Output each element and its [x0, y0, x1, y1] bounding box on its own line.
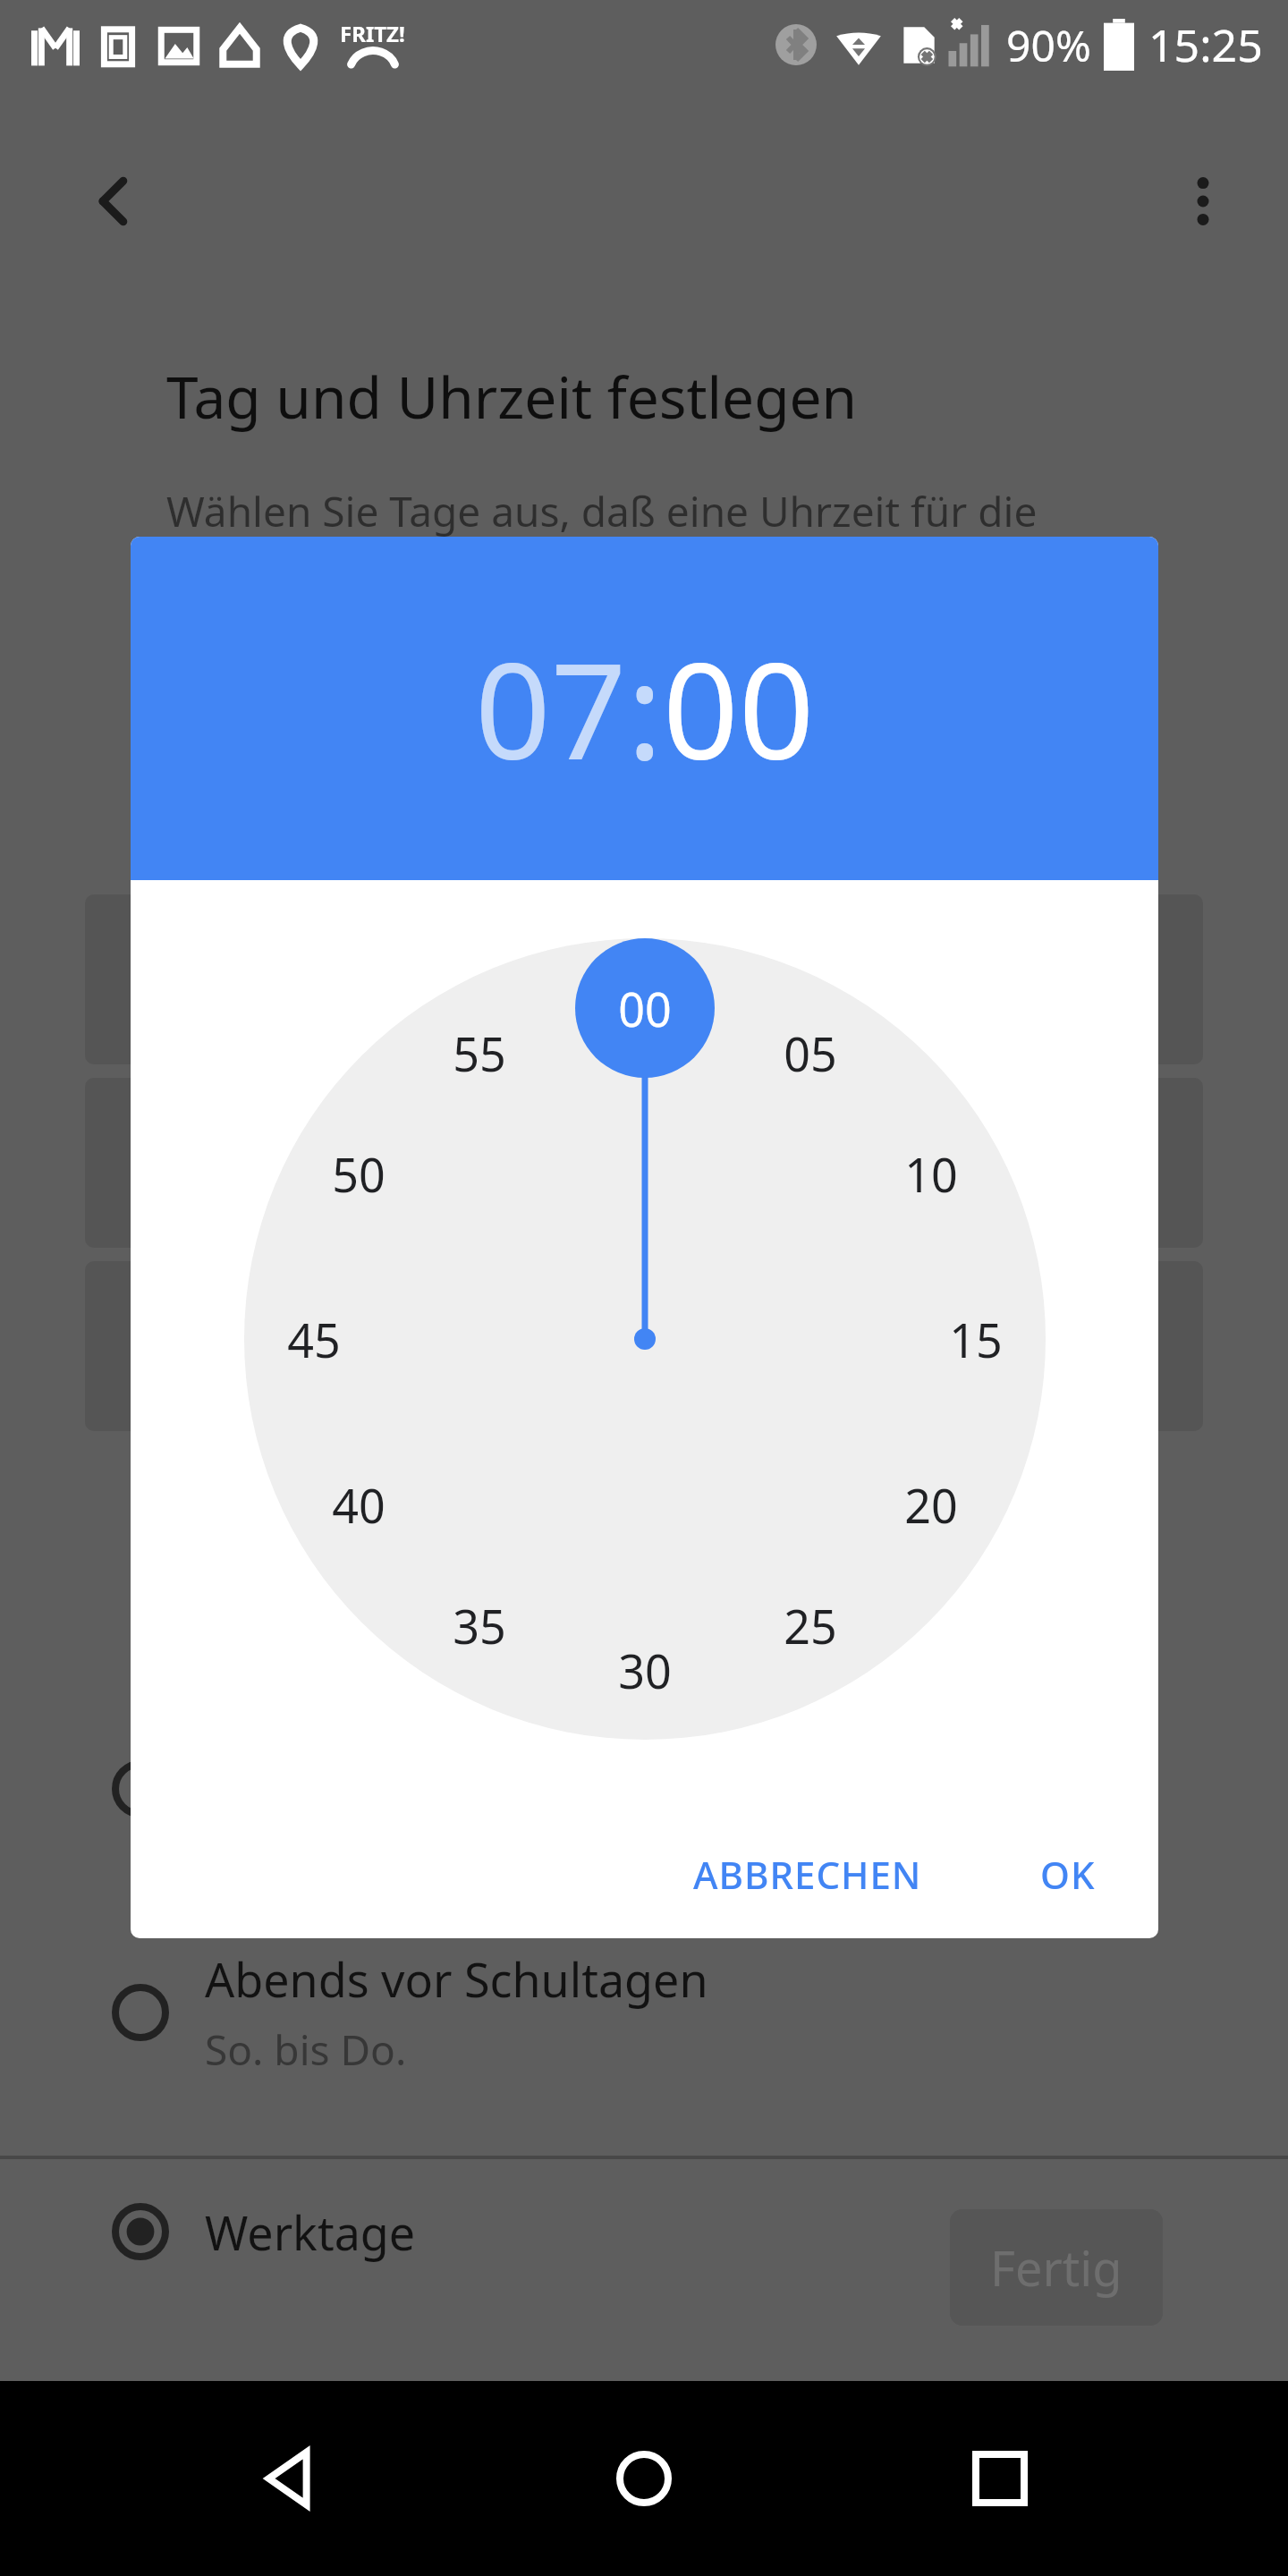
staticText: 15:25 — [1148, 14, 1263, 75]
staticText: Tag und Uhrzeit festlegen — [166, 358, 858, 436]
button[interactable]: Abends vor Schultagen — [85, 1923, 1203, 2102]
button[interactable] — [85, 1261, 1203, 1431]
button[interactable]: Back — [64, 152, 163, 250]
staticText: OK — [1040, 1849, 1096, 1900]
staticText: 20 — [904, 1473, 958, 1537]
button[interactable] — [85, 894, 1203, 1064]
staticText: 10 — [904, 1142, 958, 1206]
staticText: Werktage — [205, 2200, 416, 2264]
button[interactable]: Fertig — [950, 2209, 1163, 2326]
staticText: Fertig — [990, 2234, 1123, 2301]
staticText: 30 — [618, 1639, 672, 1702]
staticText: 55 — [453, 1021, 506, 1085]
staticText: 15 — [949, 1308, 1003, 1371]
button[interactable]: Abends vor Schultagen — [85, 1699, 1203, 1878]
staticText: So. bis Do. — [205, 2021, 407, 2078]
staticText: 05 — [784, 1021, 837, 1085]
staticText: Abends vor Schultagen — [205, 1947, 708, 2011]
button[interactable]: 10 — [882, 1138, 980, 1209]
button[interactable]: 07 — [475, 618, 627, 799]
button[interactable]: 40 — [309, 1469, 408, 1540]
staticText: 00 — [618, 977, 672, 1040]
staticText: 40 — [332, 1473, 386, 1537]
button[interactable]: Back — [222, 2411, 356, 2546]
button[interactable]: ABBRECHEN — [674, 1835, 942, 1914]
staticText: 90% — [1006, 16, 1091, 74]
staticText: 25 — [784, 1594, 837, 1657]
button[interactable]: OK — [1021, 1835, 1115, 1914]
button[interactable]: 15 — [927, 1303, 1025, 1375]
staticText: : — [627, 618, 663, 799]
button[interactable]: Recent apps — [933, 2411, 1067, 2546]
staticText: 50 — [332, 1142, 386, 1206]
button[interactable]: 00 — [663, 618, 815, 799]
button[interactable]: 20 — [882, 1469, 980, 1540]
button[interactable]: 35 — [430, 1589, 529, 1661]
button[interactable]: 30 — [596, 1634, 694, 1706]
button[interactable]: Werktage — [85, 2142, 1203, 2321]
staticText: Abends vor Schultagen — [205, 1724, 708, 1787]
staticText: 35 — [453, 1594, 506, 1657]
button[interactable]: 55 — [430, 1017, 529, 1089]
staticText: FRITZ! — [340, 19, 405, 48]
staticText: 00 — [663, 618, 815, 799]
staticText: Wählen Sie Tage aus, daß eine Uhrzeit fü… — [166, 483, 1038, 539]
staticText: 45 — [287, 1308, 341, 1371]
button[interactable]: 45 — [265, 1303, 363, 1375]
button[interactable]: 00 — [596, 972, 694, 1044]
button[interactable]: 05 — [761, 1017, 860, 1089]
button[interactable]: Home — [577, 2411, 711, 2546]
button[interactable]: 50 — [309, 1138, 408, 1209]
staticText: ABBRECHEN — [693, 1849, 922, 1900]
button[interactable]: 25 — [761, 1589, 860, 1661]
staticText: 07 — [475, 618, 627, 799]
button[interactable] — [85, 1078, 1203, 1248]
button[interactable]: More options — [1154, 152, 1252, 250]
